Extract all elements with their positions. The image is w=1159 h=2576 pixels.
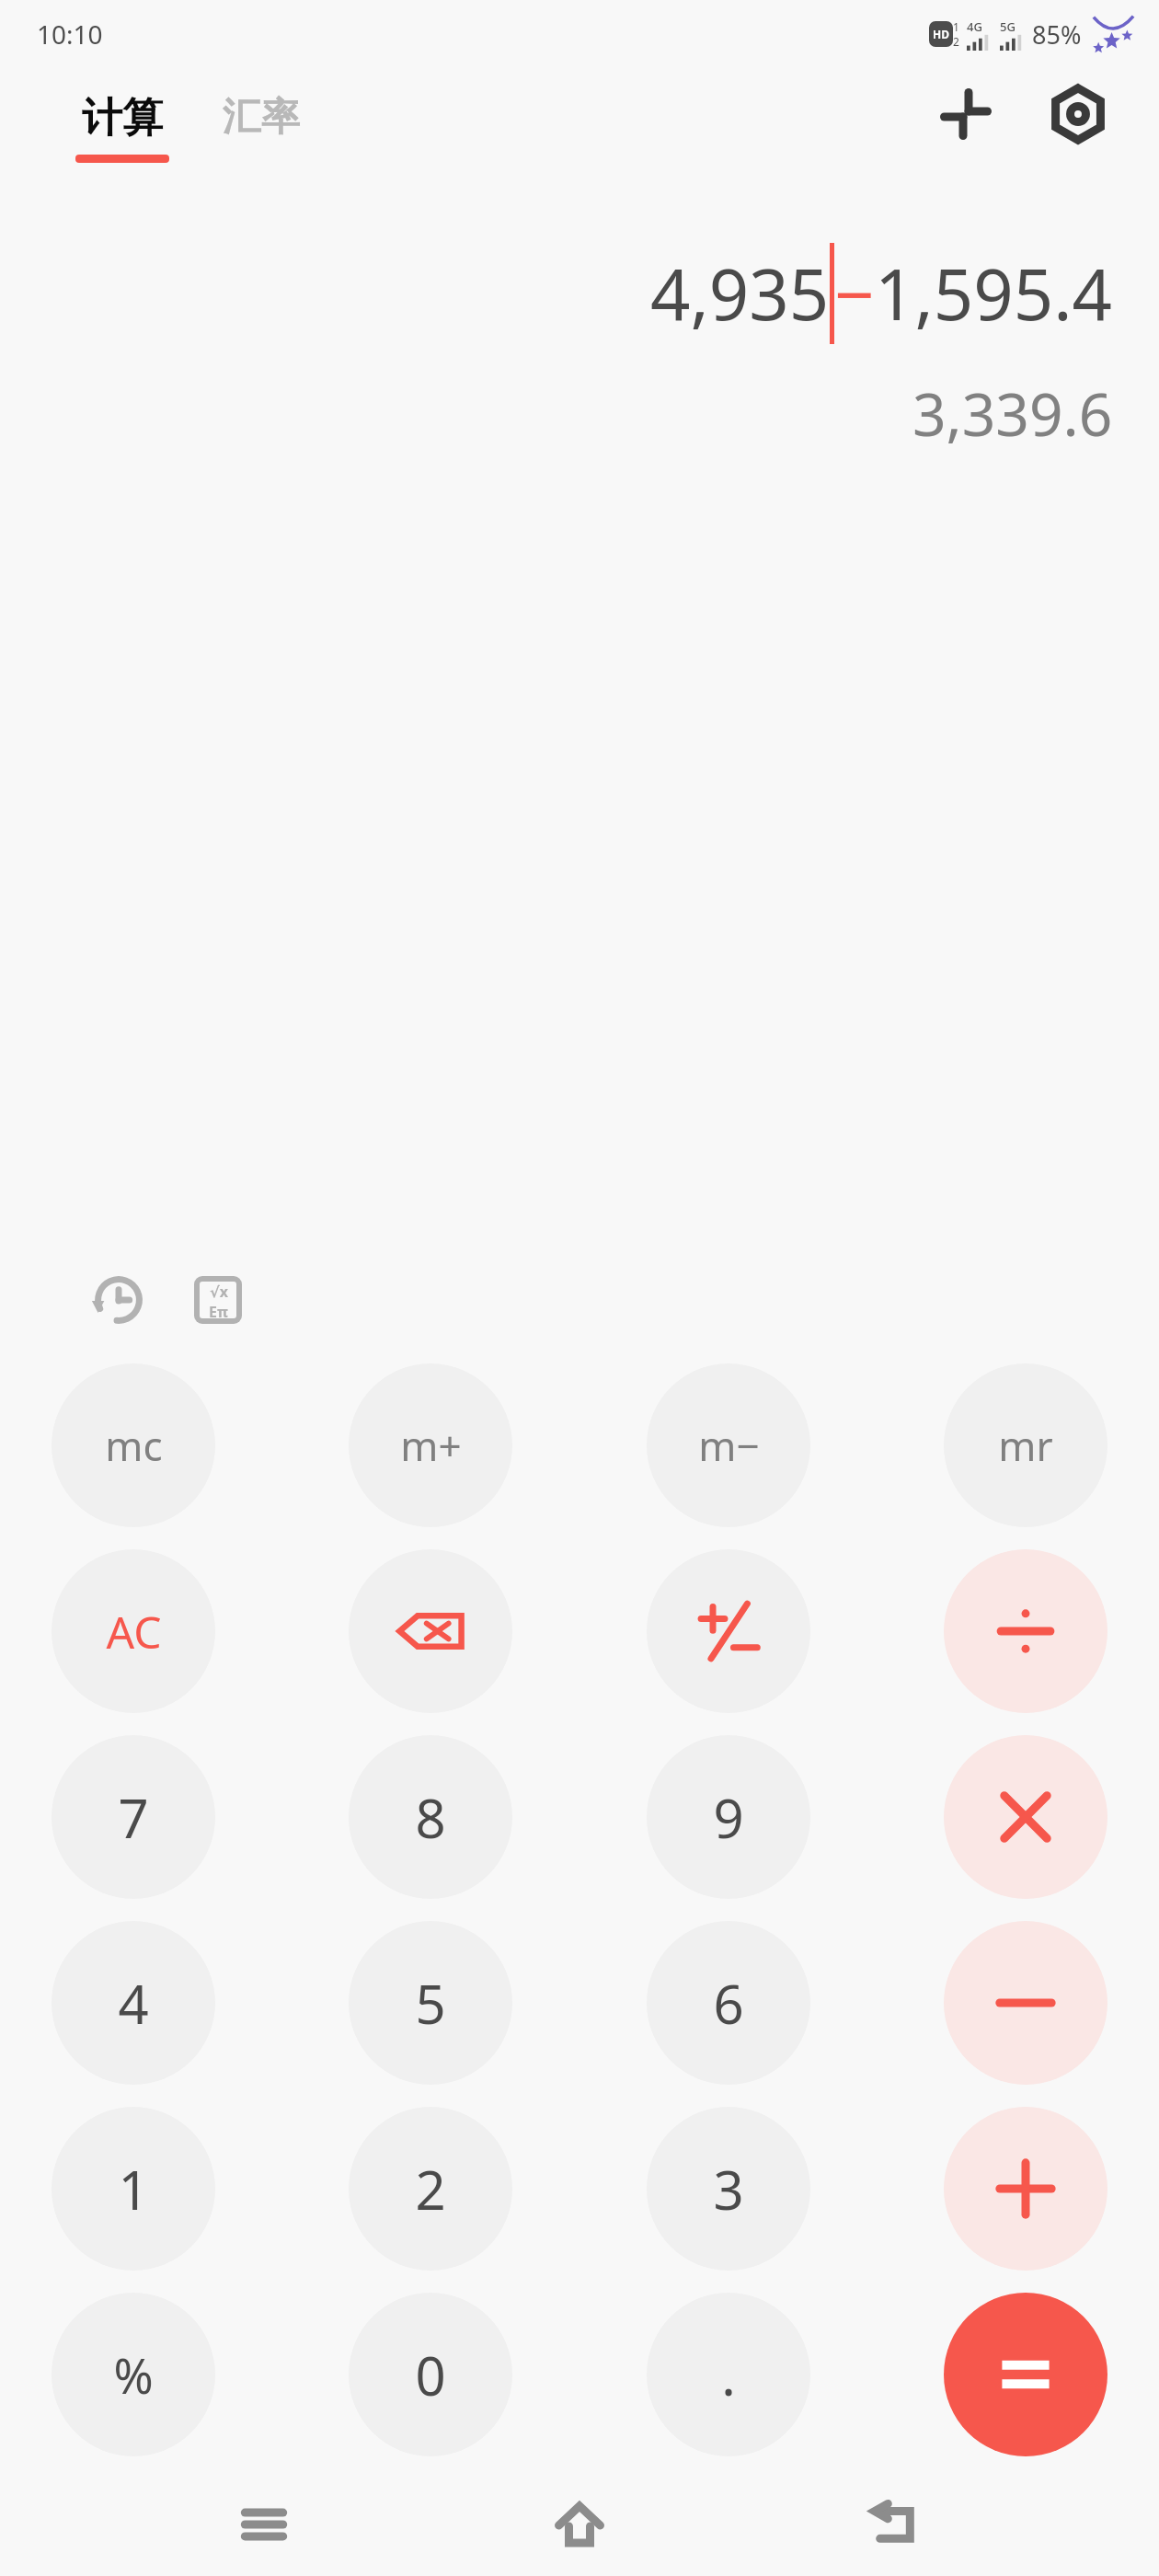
staticText: 7 xyxy=(118,1781,149,1854)
button[interactable]: 1 xyxy=(52,2107,215,2271)
button[interactable]: Plus minus xyxy=(647,1549,810,1713)
staticText: 4 xyxy=(118,1967,149,2040)
button[interactable]: AC xyxy=(52,1549,215,1713)
staticText: − xyxy=(834,246,875,341)
staticText: AC xyxy=(106,1602,162,1662)
button[interactable]: 9 xyxy=(647,1735,810,1899)
staticText: 85% xyxy=(1032,17,1082,52)
button[interactable]: 3 xyxy=(647,2107,810,2271)
staticText: mc xyxy=(105,1418,163,1473)
button[interactable]: 7 xyxy=(52,1735,215,1899)
button[interactable]: Divide xyxy=(944,1549,1107,1713)
button[interactable]: 计算 xyxy=(70,87,175,168)
staticText: 计算 xyxy=(82,93,163,144)
staticText: 9 xyxy=(713,1781,744,1854)
staticText: 5 xyxy=(415,1967,446,2040)
staticText: 10:10 xyxy=(37,17,103,52)
staticText: m− xyxy=(698,1418,760,1473)
staticText: 1 xyxy=(118,2153,149,2225)
button[interactable]: mc xyxy=(52,1363,215,1527)
staticText: 4G xyxy=(967,18,982,35)
staticText: 6 xyxy=(713,1967,744,2040)
button[interactable]: 0 xyxy=(349,2293,512,2456)
button[interactable]: m− xyxy=(647,1363,810,1527)
button[interactable]: 2 xyxy=(349,2107,512,2271)
button[interactable]: 汇率 xyxy=(217,87,305,147)
button[interactable]: Recents xyxy=(212,2473,316,2576)
button[interactable]: mr xyxy=(944,1363,1107,1527)
staticText: mr xyxy=(998,1418,1053,1473)
button[interactable]: Plus xyxy=(944,2107,1107,2271)
staticText: 5G xyxy=(1000,18,1016,35)
staticText: m+ xyxy=(400,1418,462,1473)
staticText: 2 xyxy=(953,34,959,49)
staticText: % xyxy=(113,2342,154,2408)
button[interactable]: 5 xyxy=(349,1921,512,2085)
button[interactable]: Minus xyxy=(944,1921,1107,2085)
staticText: 1 xyxy=(953,19,959,34)
button[interactable]: Backspace xyxy=(349,1549,512,1713)
staticText: √x xyxy=(210,1282,228,1302)
staticText: 8 xyxy=(415,1781,446,1854)
button[interactable]: Equals xyxy=(944,2293,1107,2456)
button[interactable]: Settings xyxy=(1038,74,1119,155)
staticText: . xyxy=(721,2339,736,2411)
button[interactable]: 8 xyxy=(349,1735,512,1899)
button[interactable]: . xyxy=(647,2293,810,2456)
button[interactable]: m+ xyxy=(349,1363,512,1527)
button[interactable]: % xyxy=(52,2293,215,2456)
staticText: 3,339.6 xyxy=(912,374,1113,454)
button[interactable]: Back xyxy=(843,2473,947,2576)
button[interactable]: Multiply xyxy=(944,1735,1107,1899)
button[interactable]: History xyxy=(79,1260,158,1340)
staticText: 4,935 xyxy=(650,246,830,341)
staticText: HD xyxy=(933,27,949,41)
staticText: 1,595.4 xyxy=(875,246,1113,341)
staticText: Eπ xyxy=(209,1302,228,1318)
staticText: 0 xyxy=(415,2339,446,2411)
staticText: 2 xyxy=(415,2153,446,2225)
button[interactable]: 6 xyxy=(647,1921,810,2085)
button[interactable]: Formulas xyxy=(178,1260,258,1340)
button[interactable]: 4 xyxy=(52,1921,215,2085)
button[interactable]: Scientific mode xyxy=(925,74,1006,155)
staticText: 汇率 xyxy=(223,93,300,142)
button[interactable]: Home xyxy=(528,2473,631,2576)
staticText: 3 xyxy=(713,2153,744,2225)
